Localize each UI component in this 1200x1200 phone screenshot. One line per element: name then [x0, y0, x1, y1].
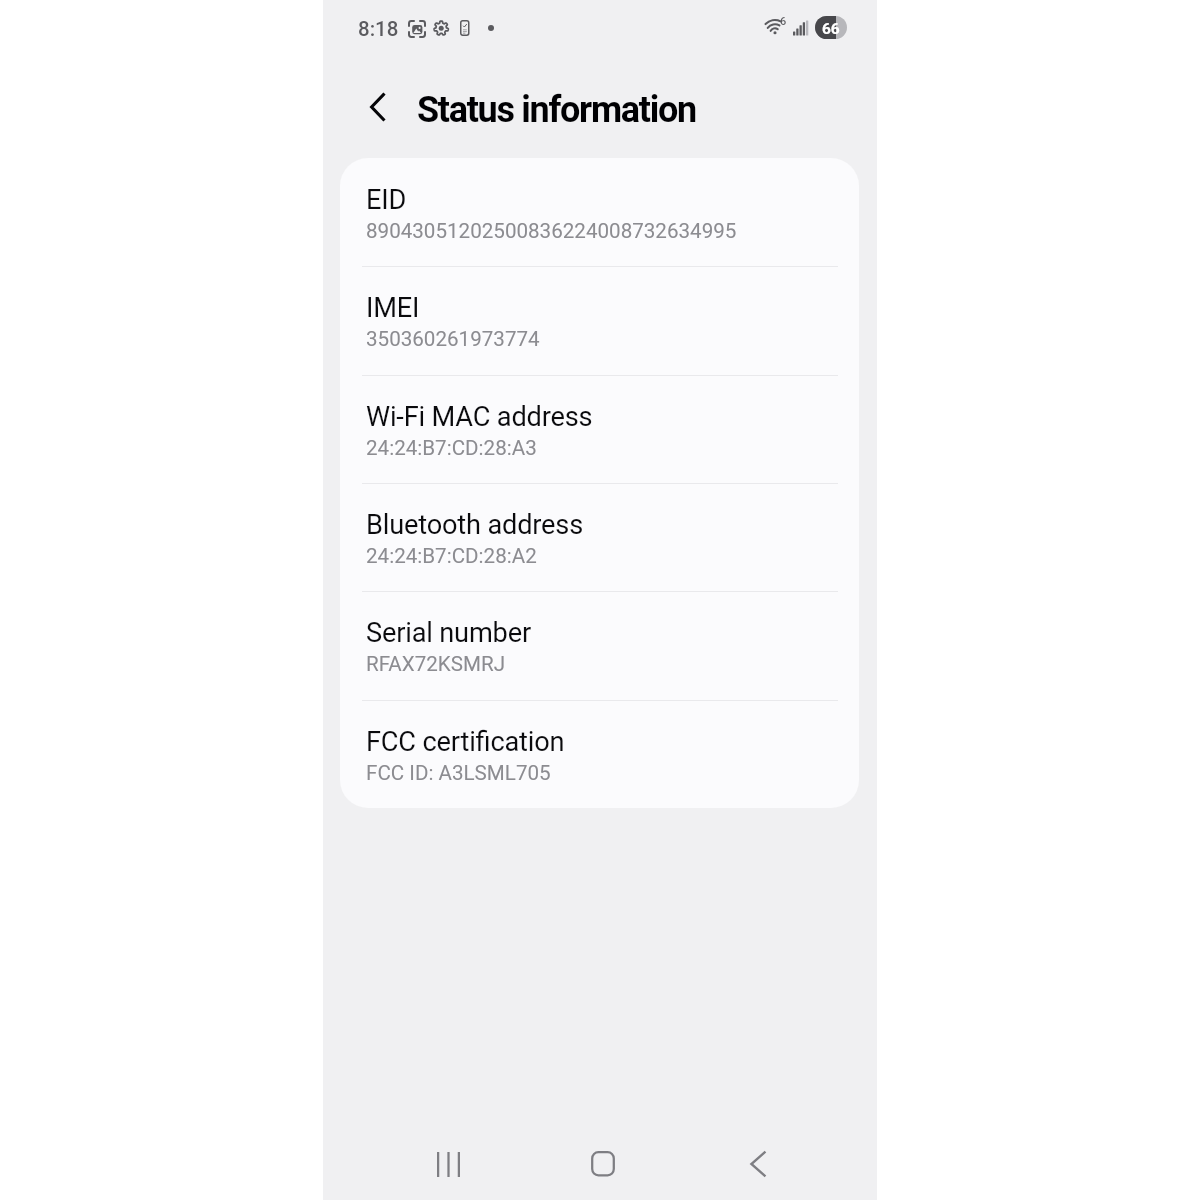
staticText: Status information: [417, 89, 696, 131]
button[interactable]: Back: [734, 1140, 782, 1188]
button[interactable]: Navigate up: [360, 84, 394, 130]
button[interactable]: Recent apps: [424, 1140, 472, 1188]
staticText: 24:24:B7:CD:28:A3: [366, 436, 537, 460]
staticText: 66: [822, 20, 840, 38]
staticText: RFAX72KSMRJ: [366, 652, 506, 676]
button[interactable]: Serial number: [340, 591, 859, 699]
button[interactable]: Bluetooth address: [340, 483, 859, 591]
button[interactable]: IMEI: [340, 266, 859, 374]
button[interactable]: Home: [579, 1140, 627, 1188]
staticText: Serial number: [366, 617, 531, 649]
staticText: 350360261973774: [366, 327, 540, 351]
staticText: IMEI: [366, 292, 420, 324]
button[interactable]: EID: [340, 158, 859, 266]
staticText: FCC certification: [366, 726, 565, 758]
button[interactable]: FCC certification: [340, 700, 859, 808]
staticText: 24:24:B7:CD:28:A2: [366, 544, 537, 568]
staticText: 89043051202500836224008732634995: [366, 219, 737, 243]
staticText: EID: [366, 184, 407, 216]
staticText: Bluetooth address: [366, 509, 584, 541]
staticText: 6: [780, 15, 787, 28]
staticText: Wi-Fi MAC address: [366, 401, 593, 433]
staticText: 8:18: [358, 17, 399, 41]
staticText: FCC ID: A3LSML705: [366, 761, 551, 785]
button[interactable]: Wi-Fi MAC address: [340, 375, 859, 483]
